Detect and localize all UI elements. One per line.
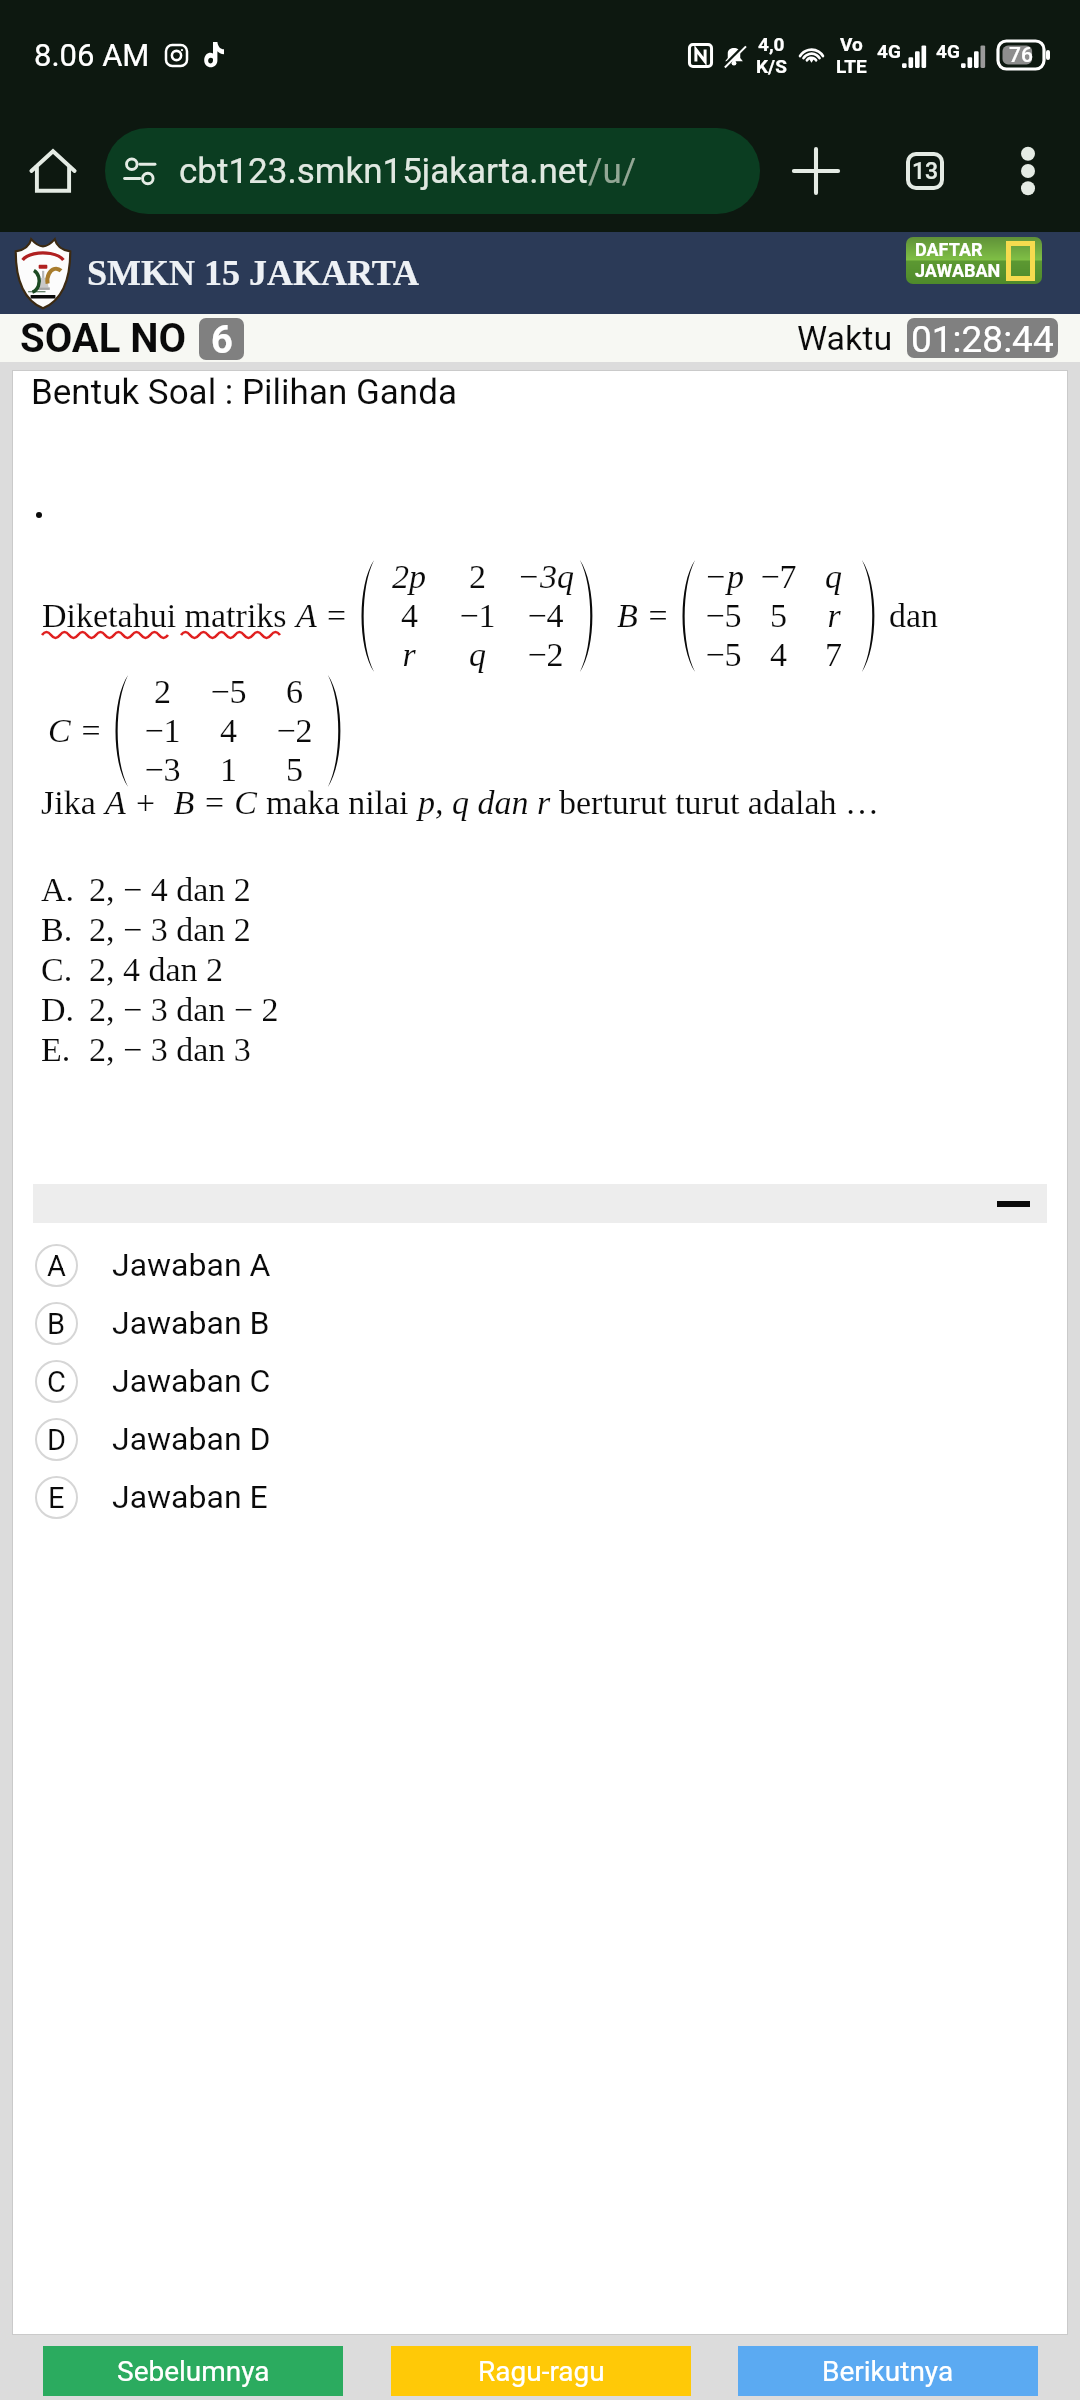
button[interactable]: Berikutnya xyxy=(738,2346,1038,2396)
button[interactable]: D xyxy=(12,1410,1068,1468)
staticText: D xyxy=(47,1423,67,1457)
staticText: A + B = C xyxy=(105,784,266,822)
staticText: 2 xyxy=(154,673,171,711)
button[interactable]: DAFTAR xyxy=(906,237,1042,284)
staticText: A xyxy=(47,1249,66,1283)
staticText: p, q dan r xyxy=(418,784,559,822)
staticText: −5 xyxy=(705,636,742,674)
staticText: 5 xyxy=(286,751,303,789)
button[interactable]: More options xyxy=(993,136,1063,206)
button[interactable]: Collapse question xyxy=(33,1184,1047,1223)
staticText: −2 xyxy=(276,712,313,750)
staticText: Ragu-ragu xyxy=(478,2355,605,2388)
staticText: Jawaban D xyxy=(112,1420,271,1458)
staticText: −3q xyxy=(517,558,574,596)
staticText: Waktu xyxy=(797,318,893,358)
button[interactable]: Ragu-ragu xyxy=(391,2346,691,2396)
staticText: r xyxy=(827,597,841,635)
button[interactable]: B xyxy=(12,1294,1068,1352)
staticText: 76 xyxy=(1009,43,1033,68)
staticText: SOAL NO xyxy=(20,315,187,362)
staticText: cbt123.smkn15jakarta.net xyxy=(179,151,588,192)
staticText: 2, − 4 dan 2 xyxy=(89,871,251,909)
staticText: B. xyxy=(41,911,89,949)
button[interactable]: New tab xyxy=(781,136,851,206)
button[interactable]: Home xyxy=(20,138,86,204)
staticText: dan xyxy=(889,597,939,635)
staticText: Vo xyxy=(840,33,863,55)
button[interactable]: C xyxy=(12,1352,1068,1410)
staticText: A = xyxy=(296,597,357,635)
staticText: 2, − 3 dan 3 xyxy=(89,1031,251,1069)
button[interactable]: Tabs: 13 open xyxy=(890,136,960,206)
staticText: −4 xyxy=(527,597,564,635)
staticText: −3 xyxy=(144,751,181,789)
staticText: berturut turut adalah … xyxy=(559,784,880,822)
staticText: −5 xyxy=(210,673,247,711)
staticText: 5 xyxy=(770,597,787,635)
staticText: A. xyxy=(41,871,89,909)
staticText: B xyxy=(47,1307,66,1341)
staticText: 6 xyxy=(211,318,233,360)
staticText: 2p xyxy=(392,558,426,596)
staticText: JAWABAN xyxy=(915,260,1001,281)
staticText: D. xyxy=(41,991,89,1029)
staticText: 8.06 AM xyxy=(34,37,150,73)
staticText: 2, − 3 dan − 2 xyxy=(89,991,279,1029)
staticText: q xyxy=(825,558,842,596)
staticText: 4 xyxy=(770,636,787,674)
staticText: Diketahui matriks xyxy=(42,597,296,635)
staticText: SMKN 15 JAKARTA xyxy=(87,253,420,293)
staticText: 2, − 3 dan 2 xyxy=(89,911,251,949)
staticText: −5 xyxy=(705,597,742,635)
button[interactable]: E xyxy=(12,1468,1068,1526)
staticText: −1 xyxy=(459,597,496,635)
staticText: maka nilai xyxy=(266,784,418,822)
staticText: B = xyxy=(617,597,678,635)
staticText: Jawaban C xyxy=(112,1362,271,1400)
staticText: DAFTAR xyxy=(915,239,983,260)
staticText: K/S xyxy=(756,55,787,77)
staticText: Jawaban B xyxy=(112,1304,270,1342)
staticText: Berikutnya xyxy=(822,2355,954,2388)
staticText: 4G xyxy=(877,40,901,62)
staticText: Jawaban A xyxy=(112,1246,271,1284)
staticText: r xyxy=(402,636,416,674)
staticText: 7 xyxy=(825,636,842,674)
staticText: C xyxy=(47,1365,66,1399)
staticText: q xyxy=(469,636,486,674)
staticText: −7 xyxy=(760,558,797,596)
staticText: −2 xyxy=(527,636,564,674)
staticText: /u/ xyxy=(588,151,637,192)
staticText: E. xyxy=(41,1031,89,1069)
staticText: E xyxy=(48,1481,65,1515)
staticText: 4 xyxy=(220,712,237,750)
staticText: 01:28:44 xyxy=(911,318,1054,358)
staticText: 4G xyxy=(936,40,960,62)
button[interactable]: A xyxy=(12,1236,1068,1294)
staticText: C. xyxy=(41,951,89,989)
staticText: 1 xyxy=(220,751,237,789)
staticText: −p xyxy=(704,558,744,596)
staticText: LTE xyxy=(836,55,867,77)
button[interactable]: cbt123.smkn15jakarta.net xyxy=(105,128,760,214)
staticText: 2 xyxy=(469,558,486,596)
staticText: 2, 4 dan 2 xyxy=(89,951,224,989)
button[interactable]: Sebelumnya xyxy=(43,2346,343,2396)
staticText: Jika xyxy=(41,784,105,822)
staticText: 13 xyxy=(912,158,939,185)
staticText: Bentuk Soal : Pilihan Ganda xyxy=(31,372,457,413)
staticText: Jawaban E xyxy=(112,1478,268,1516)
staticText: −1 xyxy=(144,712,181,750)
staticText: Sebelumnya xyxy=(117,2355,270,2388)
staticText: 4 xyxy=(401,597,418,635)
staticText: C = xyxy=(48,712,111,750)
staticText: 6 xyxy=(286,673,303,711)
staticText: 4,0 xyxy=(758,33,785,55)
